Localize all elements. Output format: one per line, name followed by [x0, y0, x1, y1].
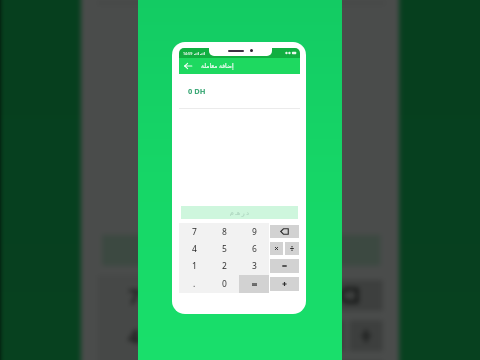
button[interactable]: 3	[239, 257, 269, 275]
staticText: 5	[222, 243, 227, 255]
button[interactable]: 4	[179, 240, 209, 257]
button[interactable]: Multiply	[314, 320, 345, 351]
button[interactable]: د ر هـ م	[102, 235, 380, 266]
button[interactable]: Equals	[239, 275, 269, 293]
staticText: إضافة معاملة	[201, 62, 234, 70]
staticText: 14:59	[183, 51, 193, 56]
button[interactable]: 1	[97, 356, 169, 360]
staticText: 9	[271, 282, 283, 311]
button[interactable]: 0	[209, 275, 239, 293]
staticText: 0	[222, 278, 227, 290]
staticText: 3	[252, 260, 257, 272]
button[interactable]: 7	[97, 275, 169, 316]
staticText: 8	[222, 226, 227, 238]
button[interactable]: 9	[239, 223, 269, 240]
button[interactable]: 8	[209, 223, 239, 240]
staticText: 1	[192, 260, 197, 272]
button[interactable]: Divide	[285, 242, 299, 255]
staticText: 4	[192, 243, 197, 255]
button[interactable]: Plus	[270, 277, 299, 291]
staticText: 0 DH	[188, 86, 206, 96]
button[interactable]: .	[179, 275, 209, 293]
button[interactable]: 2	[209, 257, 239, 275]
button[interactable]: 4	[97, 316, 169, 356]
staticText: 6	[252, 243, 257, 255]
staticText: د ر هـ م	[230, 209, 249, 217]
button[interactable]: Divide	[349, 320, 383, 351]
button[interactable]: Multiply	[270, 242, 283, 255]
staticText: 8	[200, 282, 211, 311]
button[interactable]: Minus	[270, 259, 299, 273]
staticText: 7	[128, 282, 140, 311]
button[interactable]: 1	[179, 257, 209, 275]
button[interactable]: Backspace	[314, 280, 383, 311]
button[interactable]: Backspace	[270, 225, 299, 238]
button[interactable]: 8	[169, 275, 240, 316]
button[interactable]: 7	[179, 223, 209, 240]
staticText: 9	[252, 226, 257, 238]
staticText: 7	[192, 226, 197, 238]
button[interactable]: 9	[240, 275, 311, 316]
staticText: د ر هـ م	[219, 242, 264, 261]
button[interactable]: Back	[182, 60, 194, 72]
staticText: .	[193, 278, 196, 290]
staticText: 2	[222, 260, 227, 272]
staticText: 4	[128, 323, 140, 351]
button[interactable]: 5	[209, 240, 239, 257]
button[interactable]: 6	[239, 240, 269, 257]
